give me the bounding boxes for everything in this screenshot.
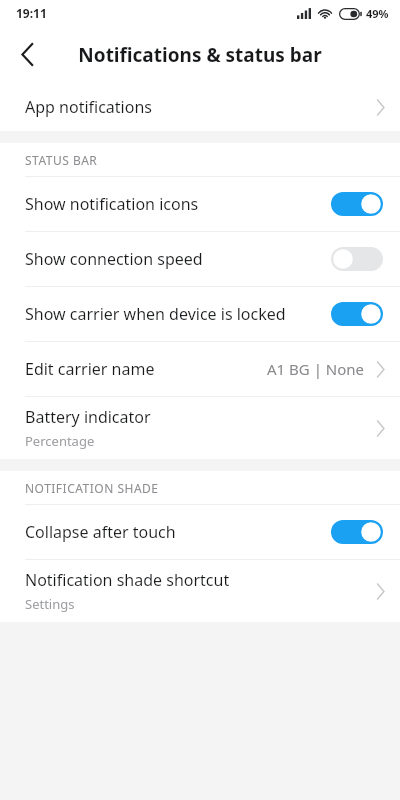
staticText: 19:11 [16,5,47,21]
staticText: Collapse after touch [25,521,331,543]
button[interactable]: On [331,520,383,544]
staticText: Notifications & status bar [78,42,322,68]
button[interactable]: On [331,302,383,326]
staticText: Notification shade shortcut [25,569,230,591]
staticText: 49% [366,6,389,21]
button[interactable]: Show carrier when device is locked [0,287,400,341]
button[interactable]: Off [331,247,383,271]
staticText: Settings [25,595,75,613]
button[interactable]: Battery indicator [0,397,400,459]
button[interactable]: Collapse after touch [0,505,400,559]
button[interactable]: Show notification icons [0,177,400,231]
staticText: STATUS BAR [25,152,98,168]
staticText: Show notification icons [25,193,331,215]
button[interactable]: Show connection speed [0,232,400,286]
button[interactable]: Back [0,26,56,83]
staticText: App notifications [25,96,152,118]
button[interactable]: On [331,192,383,216]
button[interactable]: App notifications [0,83,400,131]
button[interactable]: Notification shade shortcut [0,560,400,622]
staticText: NOTIFICATION SHADE [25,480,159,496]
staticText: Battery indicator [25,406,151,428]
staticText: A1 BG | None [267,359,365,379]
button[interactable]: Edit carrier name [0,342,400,396]
staticText: Edit carrier name [25,358,155,380]
staticText: Show carrier when device is locked [25,303,331,325]
staticText: Percentage [25,432,95,450]
staticText: Show connection speed [25,248,331,270]
